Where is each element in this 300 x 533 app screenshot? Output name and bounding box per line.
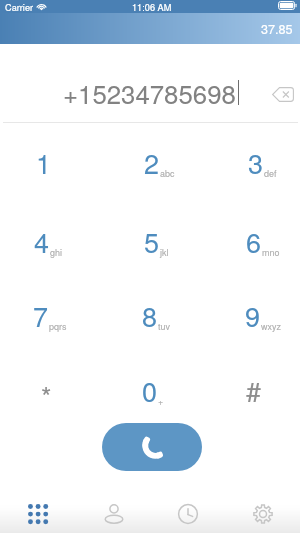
button[interactable]: 5 [102, 204, 202, 278]
staticText: 7 [33, 296, 49, 335]
button[interactable]: Recents [150, 504, 225, 533]
button[interactable]: Contacts [76, 504, 151, 533]
button[interactable]: 2 [102, 125, 202, 199]
staticText: mno [262, 246, 280, 259]
button[interactable]: 9 [203, 278, 300, 352]
button[interactable]: Backspace [266, 77, 300, 111]
staticText: 0 [142, 371, 158, 410]
button[interactable]: 7 [0, 278, 91, 352]
staticText: def [264, 167, 277, 180]
button[interactable]: 3 [206, 125, 300, 199]
staticText: * [41, 376, 52, 415]
staticText: 6 [246, 222, 262, 261]
staticText: pqrs [49, 320, 67, 333]
button[interactable]: 4 [0, 204, 92, 278]
staticText: 3 [248, 143, 264, 182]
staticText: # [246, 371, 262, 410]
staticText: 2 [144, 143, 160, 182]
staticText: abc [160, 167, 175, 180]
staticText: 37.85 [261, 20, 293, 38]
staticText: 11:06 AM [132, 0, 172, 13]
staticText: Carrier [5, 0, 34, 13]
staticText: ghi [50, 246, 63, 259]
button[interactable]: Call [102, 423, 202, 471]
button[interactable]: * [0, 353, 96, 427]
button[interactable]: 6 [204, 204, 300, 278]
staticText: 8 [142, 296, 158, 335]
staticText: tuv [158, 320, 171, 333]
staticText: 4 [34, 222, 50, 261]
button[interactable]: 8 [100, 278, 200, 352]
button[interactable]: 1 [0, 125, 94, 199]
staticText: +15234785698 [63, 74, 236, 111]
staticText: wxyz [261, 320, 281, 333]
button[interactable]: # [204, 353, 300, 427]
button[interactable]: Keypad [0, 504, 75, 533]
staticText: jkl [160, 246, 169, 259]
staticText: 1 [36, 143, 52, 182]
staticText: 5 [144, 222, 160, 261]
button[interactable]: Settings [225, 504, 300, 533]
staticText: 9 [245, 296, 261, 335]
staticText: + [158, 395, 164, 408]
button[interactable]: 0 [100, 353, 200, 427]
